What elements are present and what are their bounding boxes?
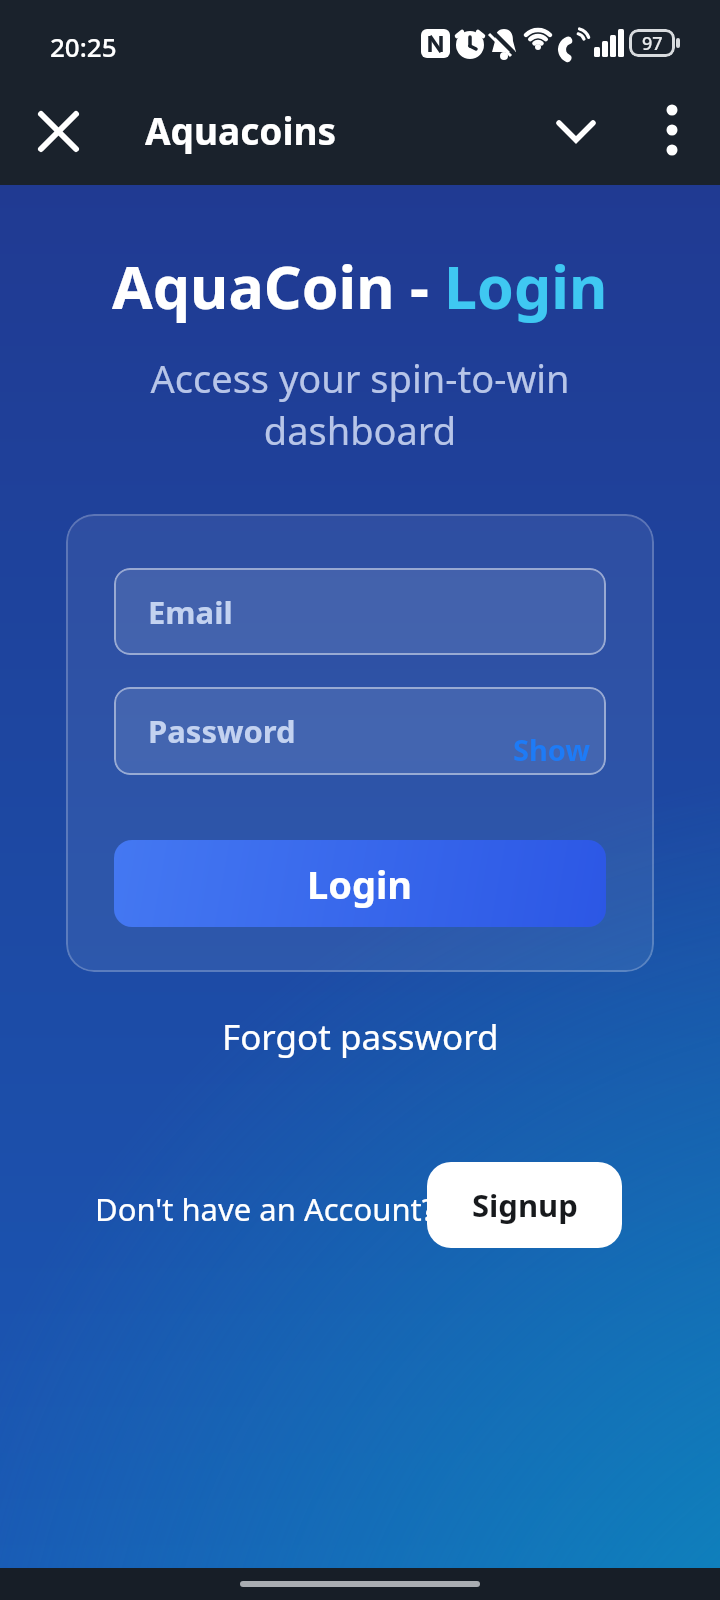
staticText: Show xyxy=(513,730,591,769)
staticText: 97 xyxy=(642,31,663,56)
staticText: AquaCoin - Login xyxy=(112,246,608,326)
staticText: Password xyxy=(148,710,296,752)
button[interactable]: Signup xyxy=(427,1162,622,1248)
button[interactable]: Show xyxy=(502,728,602,770)
staticText: Don't have an Account? xyxy=(95,1188,436,1230)
staticText: Login xyxy=(307,858,413,910)
button[interactable]: Login xyxy=(114,840,606,927)
button[interactable] xyxy=(644,100,700,160)
button[interactable]: Email xyxy=(114,568,606,655)
staticText: 20:25 xyxy=(50,29,117,64)
staticText: Forgot password xyxy=(222,1013,499,1061)
button[interactable]: Password xyxy=(114,687,606,775)
staticText: Email xyxy=(148,591,233,633)
staticText: Access your spin-to-win dashboard xyxy=(150,352,570,456)
button[interactable] xyxy=(30,103,86,159)
button[interactable]: Forgot password xyxy=(0,1012,720,1062)
staticText: Signup xyxy=(472,1184,578,1226)
button[interactable] xyxy=(548,103,604,159)
staticText: Aquacoins xyxy=(145,105,337,155)
